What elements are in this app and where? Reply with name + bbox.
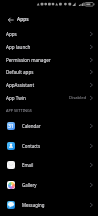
other: Open — [89, 201, 94, 209]
button[interactable]: Permission manager — [0, 54, 98, 66]
staticText: AppAssistant — [6, 82, 35, 88]
button[interactable]: Messaging — [0, 196, 98, 214]
staticText: Calendar — [22, 123, 41, 129]
staticText: Default apps — [6, 69, 34, 75]
staticText: 31 — [8, 123, 14, 129]
button[interactable]: Email — [0, 156, 98, 174]
button[interactable]: Contacts — [0, 137, 98, 155]
button[interactable]: Gallery — [0, 176, 98, 194]
staticText: Disabled — [69, 95, 87, 101]
button[interactable]: AppAssistant — [0, 79, 98, 91]
staticText: App Twin — [6, 95, 26, 101]
staticText: Messaging — [22, 202, 45, 208]
other: Open — [89, 68, 94, 76]
button[interactable]: Apps — [0, 28, 98, 40]
staticText: Contacts — [22, 143, 40, 149]
other: Open — [89, 161, 94, 169]
button[interactable]: Default apps — [0, 66, 98, 78]
other: Open — [89, 181, 94, 189]
other: Open — [89, 56, 94, 64]
staticText: Email — [22, 162, 34, 168]
other: Open — [89, 94, 94, 102]
staticText: Apps — [6, 31, 17, 37]
other: Open — [89, 142, 94, 150]
staticText: Gallery — [22, 182, 37, 188]
staticText: APP SETTINGS — [6, 108, 32, 113]
staticText: App launch — [6, 44, 31, 50]
other: Open — [89, 122, 94, 130]
button[interactable]: 31 — [0, 117, 98, 135]
other: Open — [89, 43, 94, 51]
other: Open — [89, 81, 94, 89]
button[interactable]: Back — [5, 14, 17, 26]
other: Open — [89, 30, 94, 38]
staticText: Permission manager — [6, 57, 51, 63]
button[interactable]: App launch — [0, 41, 98, 53]
staticText: Apps — [17, 16, 29, 23]
button[interactable]: App Twin — [0, 92, 98, 104]
